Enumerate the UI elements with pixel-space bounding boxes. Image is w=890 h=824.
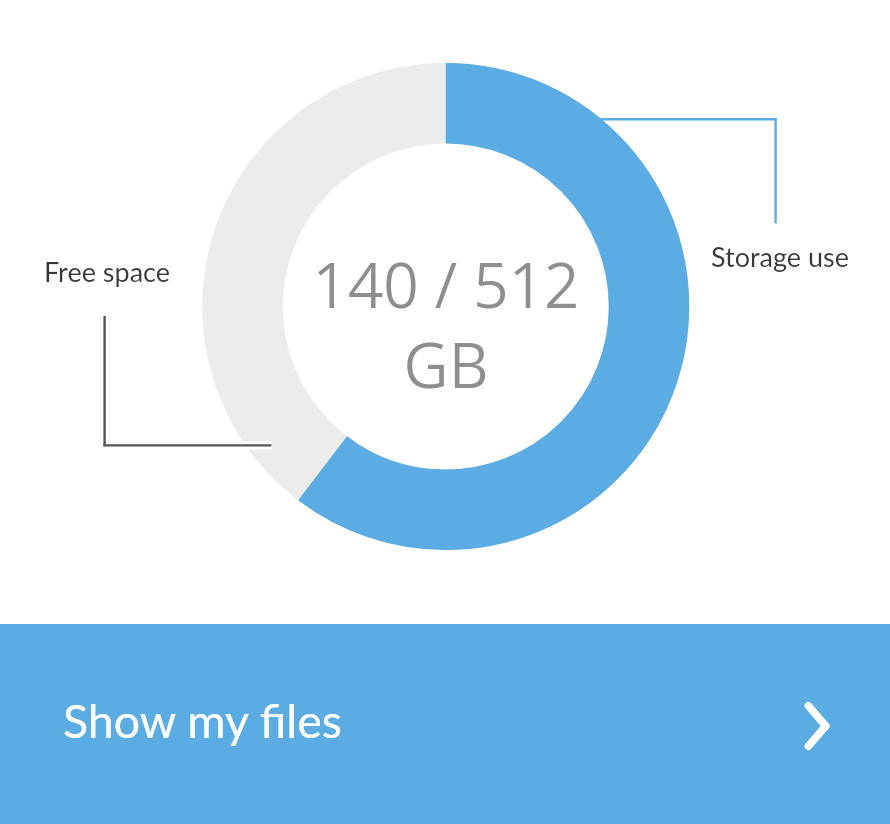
staticText: Free space — [44, 255, 170, 287]
other: Show my files — [777, 686, 857, 766]
button[interactable]: Show my files — [0, 624, 890, 824]
staticText: 140 / 512 GB — [286, 242, 606, 406]
staticText: Show my files — [63, 692, 342, 748]
staticText: Storage use — [711, 240, 849, 272]
